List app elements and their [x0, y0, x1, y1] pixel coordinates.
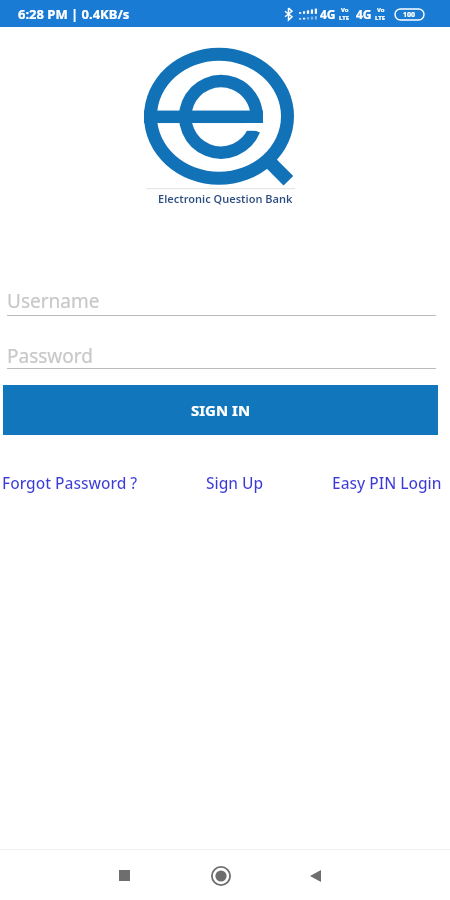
button[interactable]: Username: [7, 280, 436, 317]
staticText: 100: [403, 10, 416, 20]
staticText: 4G: [356, 6, 372, 22]
button[interactable]: Back: [293, 853, 338, 898]
button[interactable]: Forgot Password ?: [2, 472, 138, 493]
staticText: 6:28 PM | 0.4KB/s: [18, 5, 130, 23]
staticText: Username: [7, 288, 100, 314]
staticText: Sign Up: [206, 472, 264, 493]
staticText: Electronic Question Bank: [158, 191, 293, 206]
button[interactable]: Easy PIN Login: [332, 472, 442, 493]
button[interactable]: Sign Up: [206, 472, 264, 493]
button[interactable]: Recents: [102, 853, 147, 898]
staticText: Vo: [377, 6, 385, 14]
staticText: LTE: [375, 14, 386, 22]
staticText: Vo: [341, 6, 349, 14]
staticText: Forgot Password ?: [2, 472, 138, 493]
staticText: LTE: [339, 14, 350, 22]
staticText: Password: [7, 343, 93, 369]
button[interactable]: Password: [7, 335, 436, 370]
staticText: SIGN IN: [191, 400, 251, 420]
button[interactable]: Home: [198, 853, 243, 898]
button[interactable]: SIGN IN: [3, 385, 438, 435]
staticText: Easy PIN Login: [332, 472, 442, 493]
staticText: 4G: [320, 6, 336, 22]
